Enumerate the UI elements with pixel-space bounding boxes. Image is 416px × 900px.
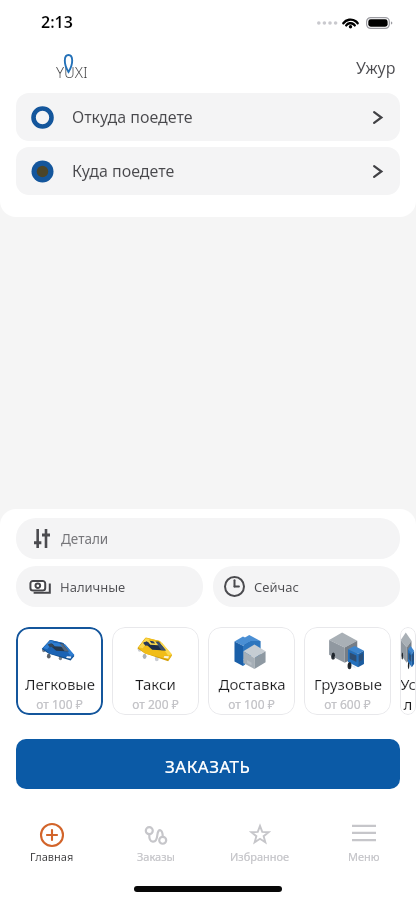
button[interactable]: Избранное [208, 814, 312, 867]
staticText: Такси [135, 674, 176, 694]
staticText: Главная [30, 849, 74, 864]
staticText: Избранное [230, 849, 290, 864]
staticText: от 100 ₽ [36, 696, 83, 712]
staticText: Легковые [25, 674, 95, 694]
staticText: от 100 ₽ [228, 696, 275, 712]
staticText: от 200 ₽ [132, 696, 179, 712]
button[interactable]: Меню [312, 814, 416, 867]
button[interactable]: Заказы [104, 814, 208, 867]
staticText: Заказы [137, 849, 175, 864]
staticText: Детали [61, 530, 109, 548]
staticText: Ужур [356, 57, 396, 79]
staticText: 2:13 [41, 11, 73, 33]
button[interactable]: ЗАКАЗАТЬ [16, 739, 400, 789]
staticText: Услуги [400, 674, 416, 715]
button[interactable]: Детали [16, 518, 400, 559]
button[interactable]: Ужур [356, 57, 396, 79]
button[interactable]: Наличные [16, 566, 203, 607]
button[interactable]: Грузовые [304, 627, 391, 715]
staticText: Доставка [218, 674, 286, 694]
staticText: YUXI [56, 62, 88, 82]
staticText: Меню [348, 849, 380, 864]
button[interactable]: Куда поедете [16, 147, 400, 195]
button[interactable]: Доставка [208, 627, 295, 715]
staticText: Сейчас [254, 578, 299, 596]
button[interactable]: Откуда поедете [16, 93, 400, 141]
staticText: Откуда поедете [72, 106, 193, 128]
staticText: Наличные [60, 578, 126, 596]
staticText: Грузовые [314, 674, 382, 694]
staticText: от 600 ₽ [324, 696, 371, 712]
button[interactable]: YUXI [56, 62, 88, 82]
staticText: ЗАКАЗАТЬ [165, 755, 251, 778]
button[interactable]: Сейчас [213, 566, 400, 607]
button[interactable]: Главная [0, 814, 104, 867]
button[interactable]: Легковые [16, 627, 103, 715]
button[interactable]: Такси [112, 627, 199, 715]
staticText: Куда поедете [72, 160, 175, 182]
button[interactable]: Услуги [400, 627, 416, 715]
